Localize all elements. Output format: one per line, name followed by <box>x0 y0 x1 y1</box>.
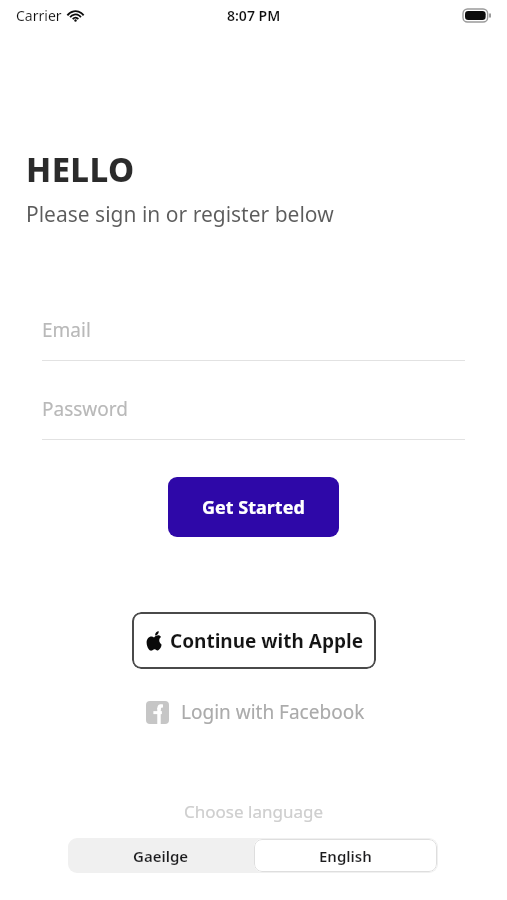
staticText: HELLO <box>26 147 135 192</box>
button[interactable]: Password <box>42 396 465 440</box>
button[interactable]: Get Started <box>168 477 339 537</box>
button[interactable]: English <box>254 839 437 872</box>
button[interactable]: Gaeilge <box>68 838 253 873</box>
button[interactable]: Apple <box>132 612 376 669</box>
staticText: Gaeilge <box>133 846 189 866</box>
staticText: Continue with Apple <box>170 628 363 654</box>
staticText: 8:07 PM <box>227 6 281 25</box>
staticText: Choose language <box>184 800 323 823</box>
staticText: Login with Facebook <box>181 699 365 725</box>
staticText: Password <box>42 396 128 422</box>
button[interactable]: Email <box>42 317 465 361</box>
button[interactable]: Facebook <box>146 694 366 730</box>
staticText: Email <box>42 317 91 343</box>
staticText: Get Started <box>202 495 305 520</box>
staticText: Carrier <box>16 6 62 25</box>
other: Apple <box>146 631 162 651</box>
staticText: English <box>319 846 372 866</box>
staticText: Please sign in or register below <box>26 200 334 229</box>
other: Facebook <box>146 701 169 724</box>
